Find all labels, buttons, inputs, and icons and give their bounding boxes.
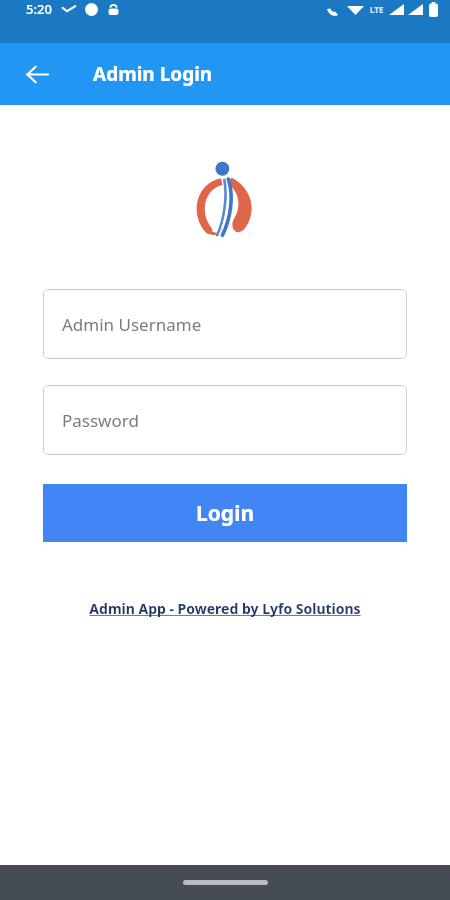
button[interactable]: Admin Username — [43, 289, 407, 359]
staticText: Login — [196, 499, 255, 528]
button[interactable]: Admin App - Powered by Lyfo Solutions — [89, 599, 361, 618]
button[interactable]: Login — [43, 484, 407, 542]
button[interactable]: Password — [43, 385, 407, 455]
staticText: LTE — [370, 4, 384, 15]
staticText: Admin Login — [93, 61, 213, 87]
button[interactable]: Home — [183, 880, 268, 885]
button[interactable]: Back — [16, 53, 58, 95]
staticText: Password — [62, 409, 139, 432]
staticText: Admin App - Powered by Lyfo Solutions — [89, 599, 361, 618]
staticText: Admin Username — [62, 313, 202, 336]
staticText: 5:20 — [26, 0, 52, 18]
